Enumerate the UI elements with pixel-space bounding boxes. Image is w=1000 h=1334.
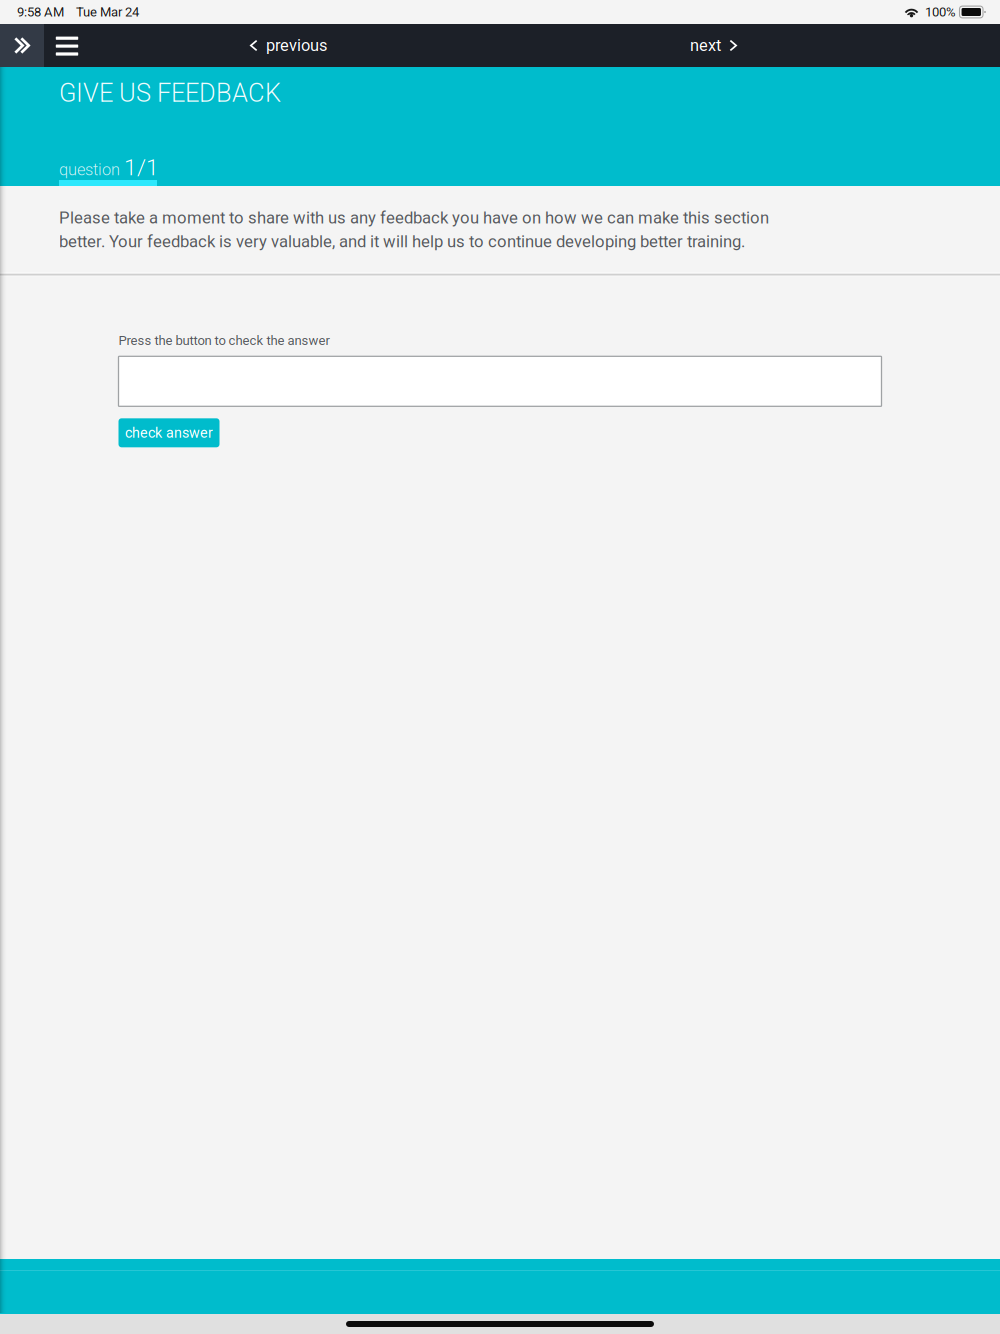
- staticText: Tue Mar 24: [76, 4, 139, 20]
- button[interactable]: Menu: [44, 24, 90, 67]
- button[interactable]: check answer: [118, 418, 219, 447]
- staticText: question: [59, 160, 120, 179]
- staticText: Please take a moment to share with us an…: [59, 208, 769, 251]
- button[interactable]: next: [676, 24, 751, 67]
- staticText: previous: [266, 36, 327, 55]
- staticText: Press the button to check the answer: [118, 333, 329, 348]
- staticText: 100%: [925, 4, 956, 20]
- staticText: GIVE US FEEDBACK: [59, 78, 281, 108]
- staticText: 9:58 AM: [17, 4, 64, 20]
- staticText: check answer: [125, 424, 213, 441]
- staticText: 1/1: [124, 154, 159, 181]
- button[interactable]: Expand sidebar: [0, 24, 44, 67]
- staticText: next: [690, 36, 721, 55]
- button[interactable]: previous: [236, 24, 341, 67]
